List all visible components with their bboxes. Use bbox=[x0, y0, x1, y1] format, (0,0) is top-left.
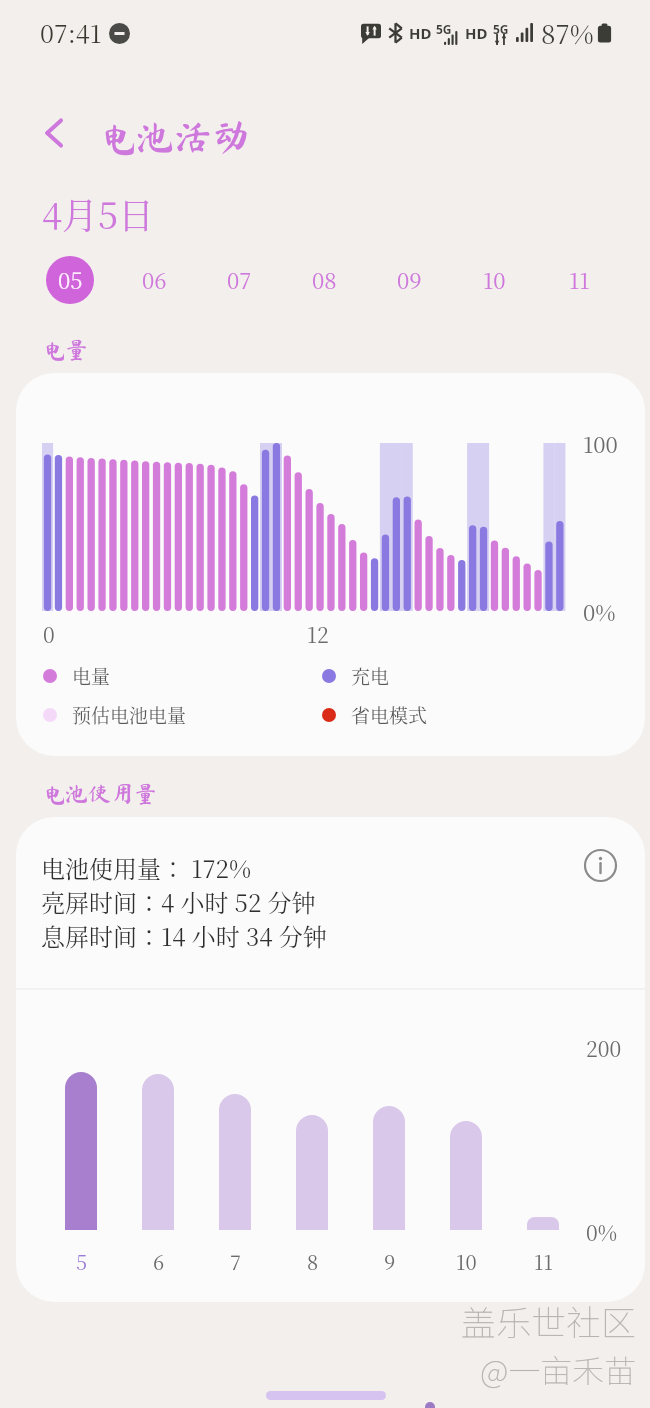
staticText: 息屏时间：14 小时 34 分钟 bbox=[41, 918, 327, 952]
button[interactable]: 09 bbox=[367, 248, 452, 312]
staticText: 07 bbox=[227, 264, 252, 296]
button[interactable]: 预估电池电量 bbox=[43, 701, 187, 728]
button[interactable]: Home bbox=[266, 1391, 386, 1400]
staticText: 盖乐世社区 bbox=[461, 1295, 637, 1346]
staticText: 6 bbox=[153, 1247, 165, 1276]
staticText: 10 bbox=[456, 1247, 477, 1276]
button[interactable]: 10 bbox=[452, 248, 537, 312]
staticText: 电池使用量 bbox=[42, 782, 157, 805]
staticText: 8 bbox=[307, 1247, 319, 1276]
button[interactable]: Back bbox=[26, 104, 84, 162]
button[interactable]: 电池使用量： 172% bbox=[16, 817, 645, 1302]
staticText: 预估电池电量 bbox=[72, 701, 187, 728]
button[interactable]: 省电模式 bbox=[322, 701, 428, 728]
staticText: 08 bbox=[312, 264, 337, 296]
staticText: 0% bbox=[586, 1217, 618, 1247]
staticText: 5 bbox=[76, 1247, 88, 1276]
staticText: 12 bbox=[307, 619, 329, 649]
staticText: 充电 bbox=[351, 662, 390, 689]
button[interactable]: 07 bbox=[197, 248, 282, 312]
button[interactable]: 电量 bbox=[43, 662, 111, 689]
staticText: 200 bbox=[586, 1033, 622, 1063]
staticText: 电量 bbox=[42, 338, 88, 361]
staticText: 11 bbox=[534, 1247, 553, 1276]
staticText: 9 bbox=[384, 1247, 396, 1276]
staticText: 4月5日 bbox=[42, 188, 155, 240]
staticText: HD bbox=[409, 23, 432, 43]
button[interactable]: 充电 bbox=[322, 662, 390, 689]
staticText: 电量 bbox=[72, 662, 111, 689]
staticText: 05 bbox=[58, 264, 83, 296]
staticText: 0 bbox=[43, 619, 55, 649]
staticText: 电池活动 bbox=[98, 118, 251, 156]
button[interactable]: 11 bbox=[537, 248, 622, 312]
staticText: 5G bbox=[493, 21, 509, 37]
staticText: 省电模式 bbox=[351, 701, 428, 728]
staticText: 7 bbox=[230, 1247, 241, 1276]
staticText: 11 bbox=[569, 264, 590, 296]
button[interactable]: 100 bbox=[16, 373, 645, 756]
staticText: 亮屏时间：4 小时 52 分钟 bbox=[41, 884, 316, 918]
staticText: 87% bbox=[541, 14, 594, 51]
staticText: 07:41 bbox=[40, 14, 102, 50]
button[interactable]: Info bbox=[577, 842, 623, 888]
staticText: HD bbox=[465, 23, 488, 43]
button[interactable]: 08 bbox=[282, 248, 367, 312]
button[interactable]: 06 bbox=[112, 248, 197, 312]
staticText: 电池使用量： 172% bbox=[41, 850, 252, 884]
staticText: 10 bbox=[483, 264, 506, 296]
staticText: @一亩禾苗 bbox=[480, 1346, 637, 1392]
staticText: 5G bbox=[436, 21, 452, 37]
staticText: 0% bbox=[583, 596, 616, 628]
staticText: 06 bbox=[142, 264, 167, 296]
staticText: 09 bbox=[397, 264, 422, 296]
staticText: 100 bbox=[583, 428, 618, 460]
button[interactable]: 05 bbox=[28, 248, 112, 312]
